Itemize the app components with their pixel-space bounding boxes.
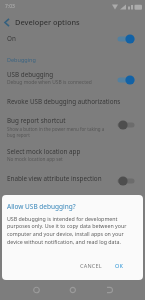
staticText: Debug mode when USB is connected xyxy=(7,79,92,86)
staticText: Bug report shortcut xyxy=(7,116,66,125)
button[interactable] xyxy=(97,284,145,300)
button[interactable] xyxy=(0,92,145,108)
button[interactable] xyxy=(117,175,135,187)
button[interactable] xyxy=(117,74,135,86)
button[interactable]: CANCEL xyxy=(77,258,104,273)
staticText: 7:03 xyxy=(5,3,15,10)
staticText: OK xyxy=(115,262,124,269)
button[interactable] xyxy=(0,112,145,139)
button[interactable]: Developer options xyxy=(15,17,80,27)
button[interactable] xyxy=(0,30,145,48)
staticText: Select mock location app xyxy=(7,147,81,156)
button[interactable] xyxy=(0,68,145,89)
button[interactable] xyxy=(0,170,145,191)
button[interactable] xyxy=(0,143,145,166)
button[interactable] xyxy=(0,284,49,300)
button[interactable]: Debugging xyxy=(7,56,36,63)
staticText: USB debugging xyxy=(7,70,54,79)
button[interactable] xyxy=(49,284,97,300)
button[interactable] xyxy=(3,18,12,27)
staticText: Enable view attribute inspection xyxy=(7,174,102,183)
button[interactable]: OK xyxy=(112,258,126,273)
staticText: USB debugging is intended for developmen… xyxy=(7,215,127,246)
staticText: Allow USB debugging? xyxy=(7,202,76,211)
button[interactable] xyxy=(117,119,135,131)
staticText: CANCEL xyxy=(80,262,102,269)
staticText: Revoke USB debugging authorizations xyxy=(7,97,121,106)
staticText: Show a button in the power menu for taki… xyxy=(7,126,105,138)
staticText: No mock location app set xyxy=(7,156,63,162)
staticText: On xyxy=(7,34,16,43)
button[interactable] xyxy=(117,33,135,45)
